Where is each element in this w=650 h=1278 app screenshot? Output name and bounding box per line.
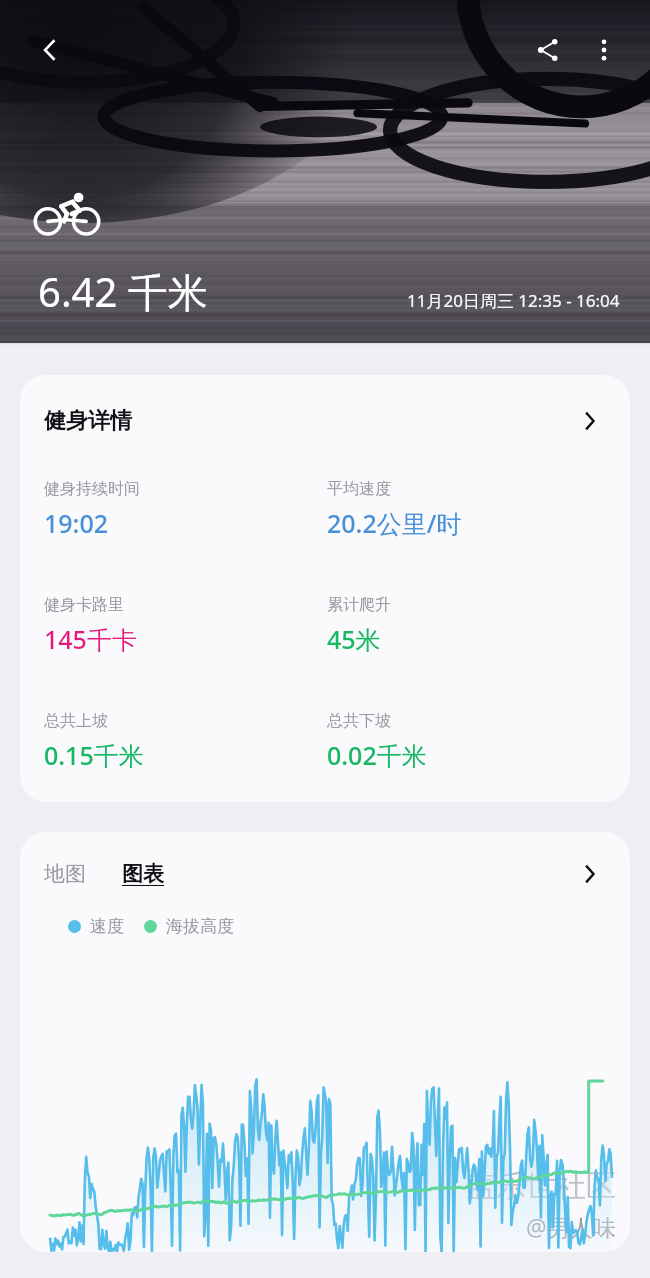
staticText: 145千卡 xyxy=(44,622,137,656)
button[interactable]: 地图 xyxy=(44,861,90,887)
staticText: 累计爬升 xyxy=(327,595,391,615)
staticText: 总共上坡 xyxy=(44,711,108,731)
button[interactable]: 健身详情 xyxy=(20,375,630,802)
staticText: 平均速度 xyxy=(327,479,391,499)
staticText: 健身持续时间 xyxy=(44,479,140,499)
staticText: 速度 xyxy=(90,916,124,937)
staticText: 20.2公里/时 xyxy=(327,506,462,540)
staticText: 盖乐世社区 xyxy=(466,1167,616,1205)
button[interactable]: Back xyxy=(22,22,78,78)
staticText: 0.15千米 xyxy=(44,738,144,772)
button[interactable]: More options xyxy=(576,22,632,78)
staticText: 19:02 xyxy=(44,506,109,540)
staticText: 45米 xyxy=(327,622,381,656)
staticText: 地图 xyxy=(44,861,86,887)
button[interactable]: Open fitness details xyxy=(570,401,610,441)
button[interactable]: 图表 xyxy=(122,861,164,887)
button[interactable]: Open chart xyxy=(570,854,610,894)
staticText: 图表 xyxy=(122,861,164,887)
staticText: 总共下坡 xyxy=(327,711,391,731)
button[interactable]: Share xyxy=(520,22,576,78)
staticText: 健身详情 xyxy=(44,407,132,435)
staticText: @男人味 xyxy=(526,1211,616,1242)
staticText: 6.42 千米 xyxy=(38,264,208,319)
staticText: 海拔高度 xyxy=(166,916,234,937)
staticText: 11月20日周三 12:35 - 16:04 xyxy=(407,289,620,312)
staticText: 0.02千米 xyxy=(327,738,427,772)
staticText: 健身卡路里 xyxy=(44,595,124,615)
